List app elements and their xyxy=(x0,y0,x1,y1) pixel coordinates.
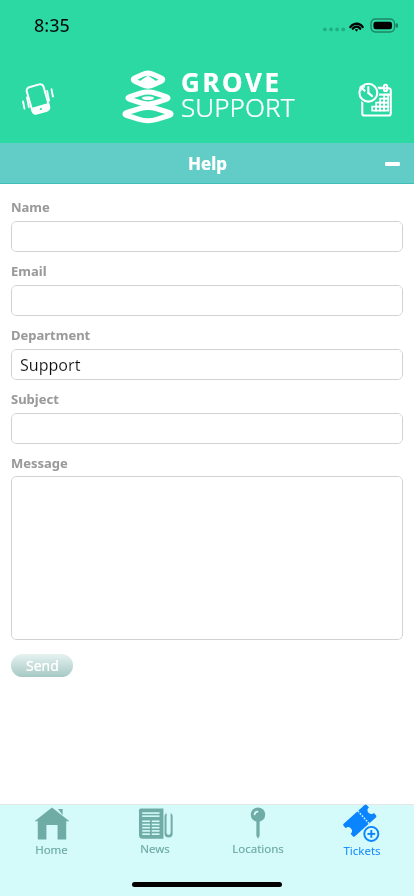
staticText: News xyxy=(140,841,170,857)
staticText: Tickets xyxy=(343,843,381,859)
staticText: Message xyxy=(11,454,68,472)
staticText: Help xyxy=(188,152,227,175)
staticText: 8:35 xyxy=(34,13,70,38)
button[interactable]: Tickets xyxy=(310,806,414,859)
button[interactable]: Schedule xyxy=(349,73,401,125)
staticText: SUPPORT xyxy=(181,89,295,124)
button[interactable] xyxy=(11,476,403,640)
staticText: Email xyxy=(11,262,47,280)
staticText: Subject xyxy=(11,390,59,408)
button[interactable] xyxy=(11,221,403,252)
button[interactable]: Home xyxy=(0,806,103,858)
staticText: Support xyxy=(20,354,81,376)
staticText: Department xyxy=(11,326,91,344)
button[interactable]: Help xyxy=(0,143,414,184)
button[interactable]: News xyxy=(103,806,206,857)
staticText: Home xyxy=(35,842,68,858)
button[interactable]: Send xyxy=(11,654,73,677)
button[interactable] xyxy=(11,285,403,316)
button[interactable]: Call support xyxy=(12,73,64,125)
staticText: GROVE xyxy=(181,64,282,99)
button[interactable]: Support xyxy=(11,349,403,380)
button[interactable]: Locations xyxy=(206,806,310,857)
staticText: Locations xyxy=(232,841,284,857)
staticText: Name xyxy=(11,198,50,216)
button[interactable] xyxy=(11,413,403,444)
staticText: Send xyxy=(26,656,59,675)
